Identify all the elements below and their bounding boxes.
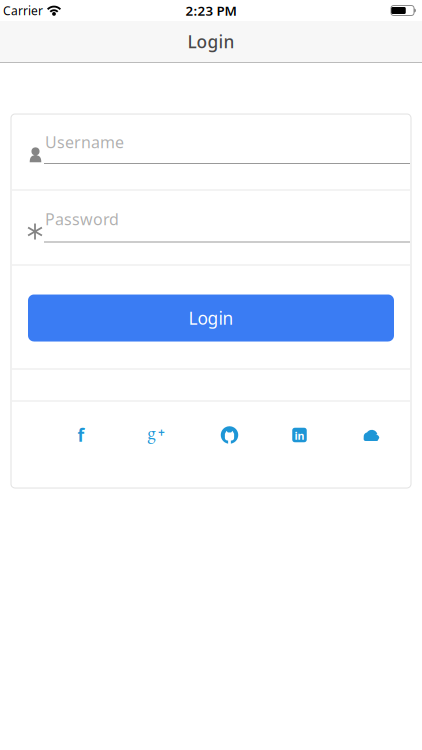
staticText: 2:23 PM bbox=[185, 2, 236, 19]
staticText: Login bbox=[187, 30, 234, 53]
staticText: g bbox=[147, 420, 155, 445]
button[interactable]: Username bbox=[44, 121, 410, 163]
button[interactable]: Sign in with Facebook bbox=[68, 422, 94, 448]
button[interactable]: Sign in with GitHub bbox=[216, 422, 242, 448]
staticText: Carrier bbox=[3, 2, 43, 18]
staticText: f bbox=[77, 423, 84, 446]
button[interactable]: Sign in with LinkedIn bbox=[286, 422, 312, 448]
staticText: Login bbox=[188, 306, 233, 329]
button[interactable]: Login bbox=[28, 294, 394, 341]
button[interactable]: Password bbox=[44, 199, 410, 241]
staticText: Username bbox=[45, 131, 124, 153]
button[interactable]: Sign in with iCloud bbox=[358, 422, 384, 448]
staticText: in bbox=[294, 428, 304, 443]
staticText: Password bbox=[45, 208, 119, 230]
button[interactable]: Sign in with Google bbox=[142, 422, 168, 448]
staticText: + bbox=[158, 424, 165, 440]
